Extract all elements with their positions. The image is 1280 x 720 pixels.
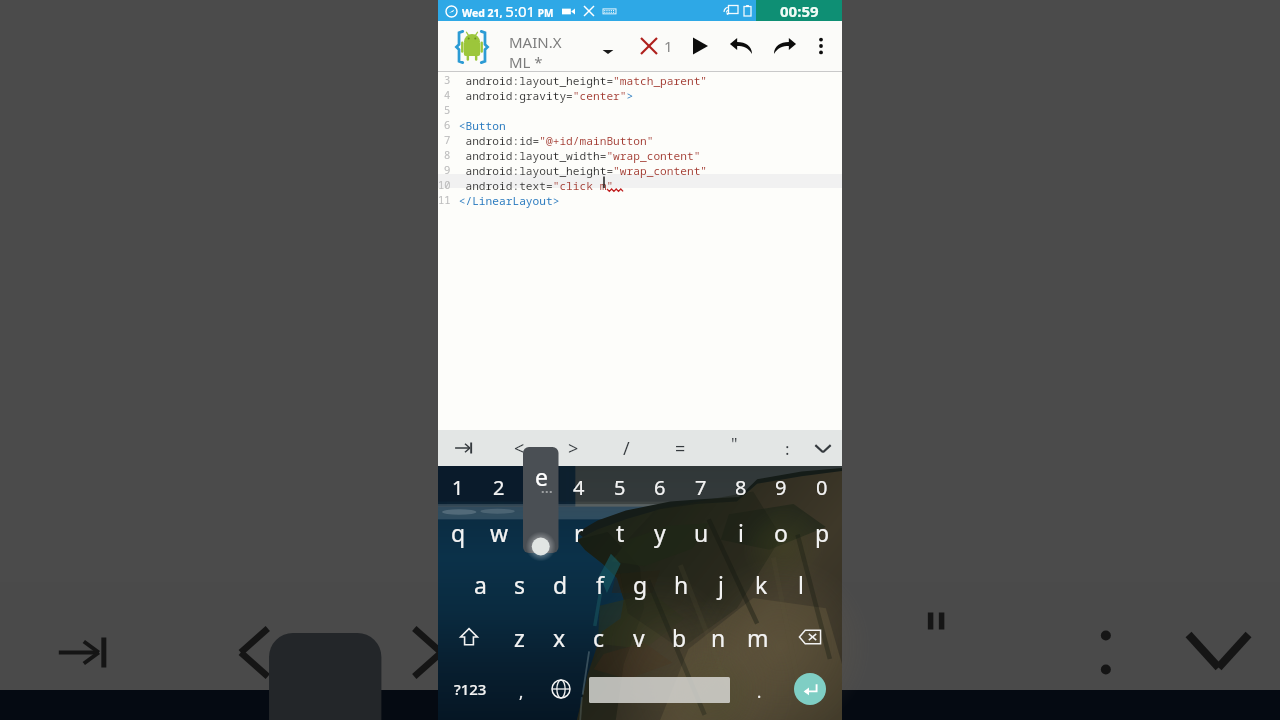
button[interactable]: 3 [519,469,559,505]
button[interactable]: 4 [559,469,599,505]
staticText: android:gravity="center"> [452,88,634,103]
staticText: g [633,569,648,600]
staticText: , [519,681,524,703]
staticText: 9 [775,474,787,501]
button[interactable]: 2 [479,469,519,505]
button[interactable]: y [640,514,680,550]
button[interactable]: d [540,566,580,602]
staticText: u [694,517,709,548]
button[interactable]: 0 [802,469,842,505]
button[interactable]: 5 [600,469,640,505]
button[interactable]: e [519,514,559,550]
button[interactable]: g [620,566,660,602]
staticText: 11 [438,193,451,207]
button[interactable]: , [501,674,541,710]
button[interactable]: z [499,619,539,655]
button[interactable]: f [580,566,620,602]
staticText: MAIN.X [509,32,562,52]
button[interactable]: " [708,430,760,466]
staticText: " [731,433,738,455]
button[interactable]: 1 [438,469,478,505]
button[interactable]: p [802,514,842,550]
button[interactable]: . [739,674,779,710]
staticText: b [672,622,687,653]
button[interactable]: k [741,566,781,602]
staticText: <Button [452,118,506,133]
staticText: o [774,517,788,548]
staticText: t [616,517,625,548]
staticText: ML * [509,52,543,72]
staticText: p [815,517,830,548]
button[interactable]: : [761,430,813,466]
button[interactable]: 9 [761,469,801,505]
button[interactable]: r [559,514,599,550]
button[interactable]: ?123 [450,671,490,707]
button[interactable]: Run [682,28,718,64]
button[interactable]: v [619,619,659,655]
staticText: z [514,622,525,653]
button[interactable]: / [600,430,652,466]
staticText: w [490,517,509,548]
staticText: h [674,569,689,600]
staticText: android:text="click m" [452,178,614,193]
button[interactable]: Enter [794,673,826,705]
staticText: android:layout_height="match_parent" [452,73,708,88]
button[interactable]: q [438,514,478,550]
button[interactable]: Errors [631,28,667,64]
button[interactable]: Space [589,677,730,703]
button[interactable]: 7 [681,469,721,505]
staticText: </LinearLayout> [452,193,560,208]
button[interactable]: s [500,566,540,602]
button[interactable]: Choose file [590,32,626,68]
button[interactable]: b [659,619,699,655]
staticText: 4 [573,474,585,501]
staticText: y [654,517,666,548]
button[interactable]: < [493,430,545,466]
button[interactable]: 3 [438,72,842,430]
staticText: n [711,622,726,653]
button[interactable]: j [701,566,741,602]
staticText: Wed 21, 5:01 PM [462,1,554,21]
staticText: m [747,622,769,653]
button[interactable]: 8 [721,469,761,505]
button[interactable]: Undo [723,28,759,64]
staticText: e [535,461,548,489]
button[interactable]: More options [803,28,839,64]
staticText: j [718,569,724,600]
button[interactable]: Shift [449,619,489,655]
staticText: 8 [735,474,747,501]
staticText: 00:59 [780,1,819,21]
button[interactable]: Change language [541,671,581,707]
button[interactable]: AIDE [450,25,494,69]
button[interactable]: l [781,566,821,602]
button[interactable]: Tab [439,430,491,466]
button[interactable]: m [738,619,778,655]
button[interactable]: w [479,514,519,550]
staticText: 1 [664,36,673,56]
button[interactable]: o [761,514,801,550]
button[interactable]: Redo [767,28,803,64]
button[interactable]: i [721,514,761,550]
button[interactable]: = [654,430,706,466]
button[interactable]: > [547,430,599,466]
button[interactable]: a [460,566,500,602]
staticText: ?123 [454,679,487,699]
button[interactable]: 6 [640,469,680,505]
staticText: : [785,437,790,460]
staticText: 3 [533,474,545,501]
staticText: v [633,622,645,653]
button[interactable]: Hide keyboard [797,430,849,466]
button[interactable]: n [698,619,738,655]
staticText: r [574,517,584,548]
button[interactable]: u [681,514,721,550]
staticText: android:id="@+id/mainButton" [452,133,654,148]
button[interactable]: h [661,566,701,602]
button[interactable]: c [579,619,619,655]
staticText: s [514,569,526,600]
staticText: 5 [444,103,451,117]
button[interactable]: t [600,514,640,550]
button[interactable]: Backspace [790,619,830,655]
button[interactable]: x [539,619,579,655]
staticText: 7 [444,133,451,147]
staticText: x [553,622,566,653]
